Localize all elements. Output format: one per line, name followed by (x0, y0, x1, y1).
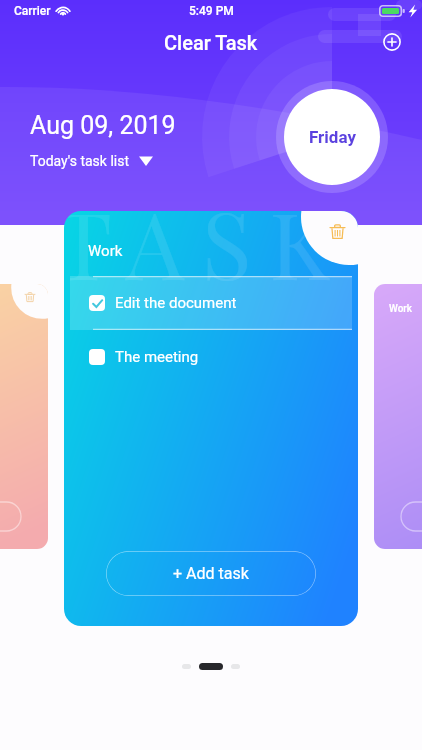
staticText: + Add task (173, 564, 249, 583)
button[interactable]: Today's task list (30, 153, 153, 169)
staticText: TASK (64, 211, 348, 303)
staticText: Edit the document (115, 294, 237, 312)
staticText: Aug 09, 2019 (30, 111, 176, 140)
button[interactable] (0, 284, 48, 549)
button[interactable]: Add task (377, 27, 407, 57)
staticText: Clear Task (164, 31, 258, 54)
button[interactable]: Work (374, 284, 422, 549)
button[interactable] (70, 276, 352, 330)
staticText: Friday (309, 127, 356, 147)
staticText: The meeting (115, 348, 199, 366)
staticText: Carrier (14, 4, 51, 18)
button[interactable]: The meeting (64, 330, 358, 384)
button[interactable]: Delete list (323, 217, 351, 245)
button[interactable]: + Add task (106, 551, 316, 596)
staticText: Today's task list (30, 153, 129, 169)
staticText: Work (88, 242, 123, 260)
staticText: Work (389, 303, 413, 315)
staticText: 5:49 PM (189, 4, 234, 18)
button[interactable]: Edit the document (64, 276, 358, 330)
button[interactable]: Friday (284, 89, 380, 185)
